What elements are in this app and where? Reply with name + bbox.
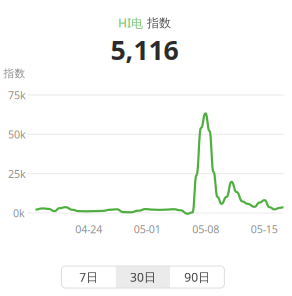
staticText: 05-08 [192, 222, 219, 236]
staticText: 05-01 [134, 222, 161, 236]
staticText: 90日 [184, 269, 210, 285]
button[interactable]: 7日 [61, 266, 116, 288]
staticText: 50k [8, 127, 26, 141]
staticText: HI电 [118, 15, 143, 31]
staticText: 指数 [3, 67, 25, 80]
button[interactable]: 30日 [116, 266, 170, 288]
staticText: 7日 [79, 269, 98, 285]
staticText: 5,116 [110, 32, 178, 67]
staticText: 75k [8, 88, 26, 102]
staticText: 25k [8, 167, 26, 181]
staticText: 0k [13, 206, 25, 220]
button[interactable]: 90日 [170, 266, 224, 288]
staticText: 05-15 [251, 222, 278, 236]
staticText: 指数 [143, 16, 171, 30]
staticText: 04-24 [75, 222, 102, 236]
staticText: 30日 [130, 269, 156, 285]
